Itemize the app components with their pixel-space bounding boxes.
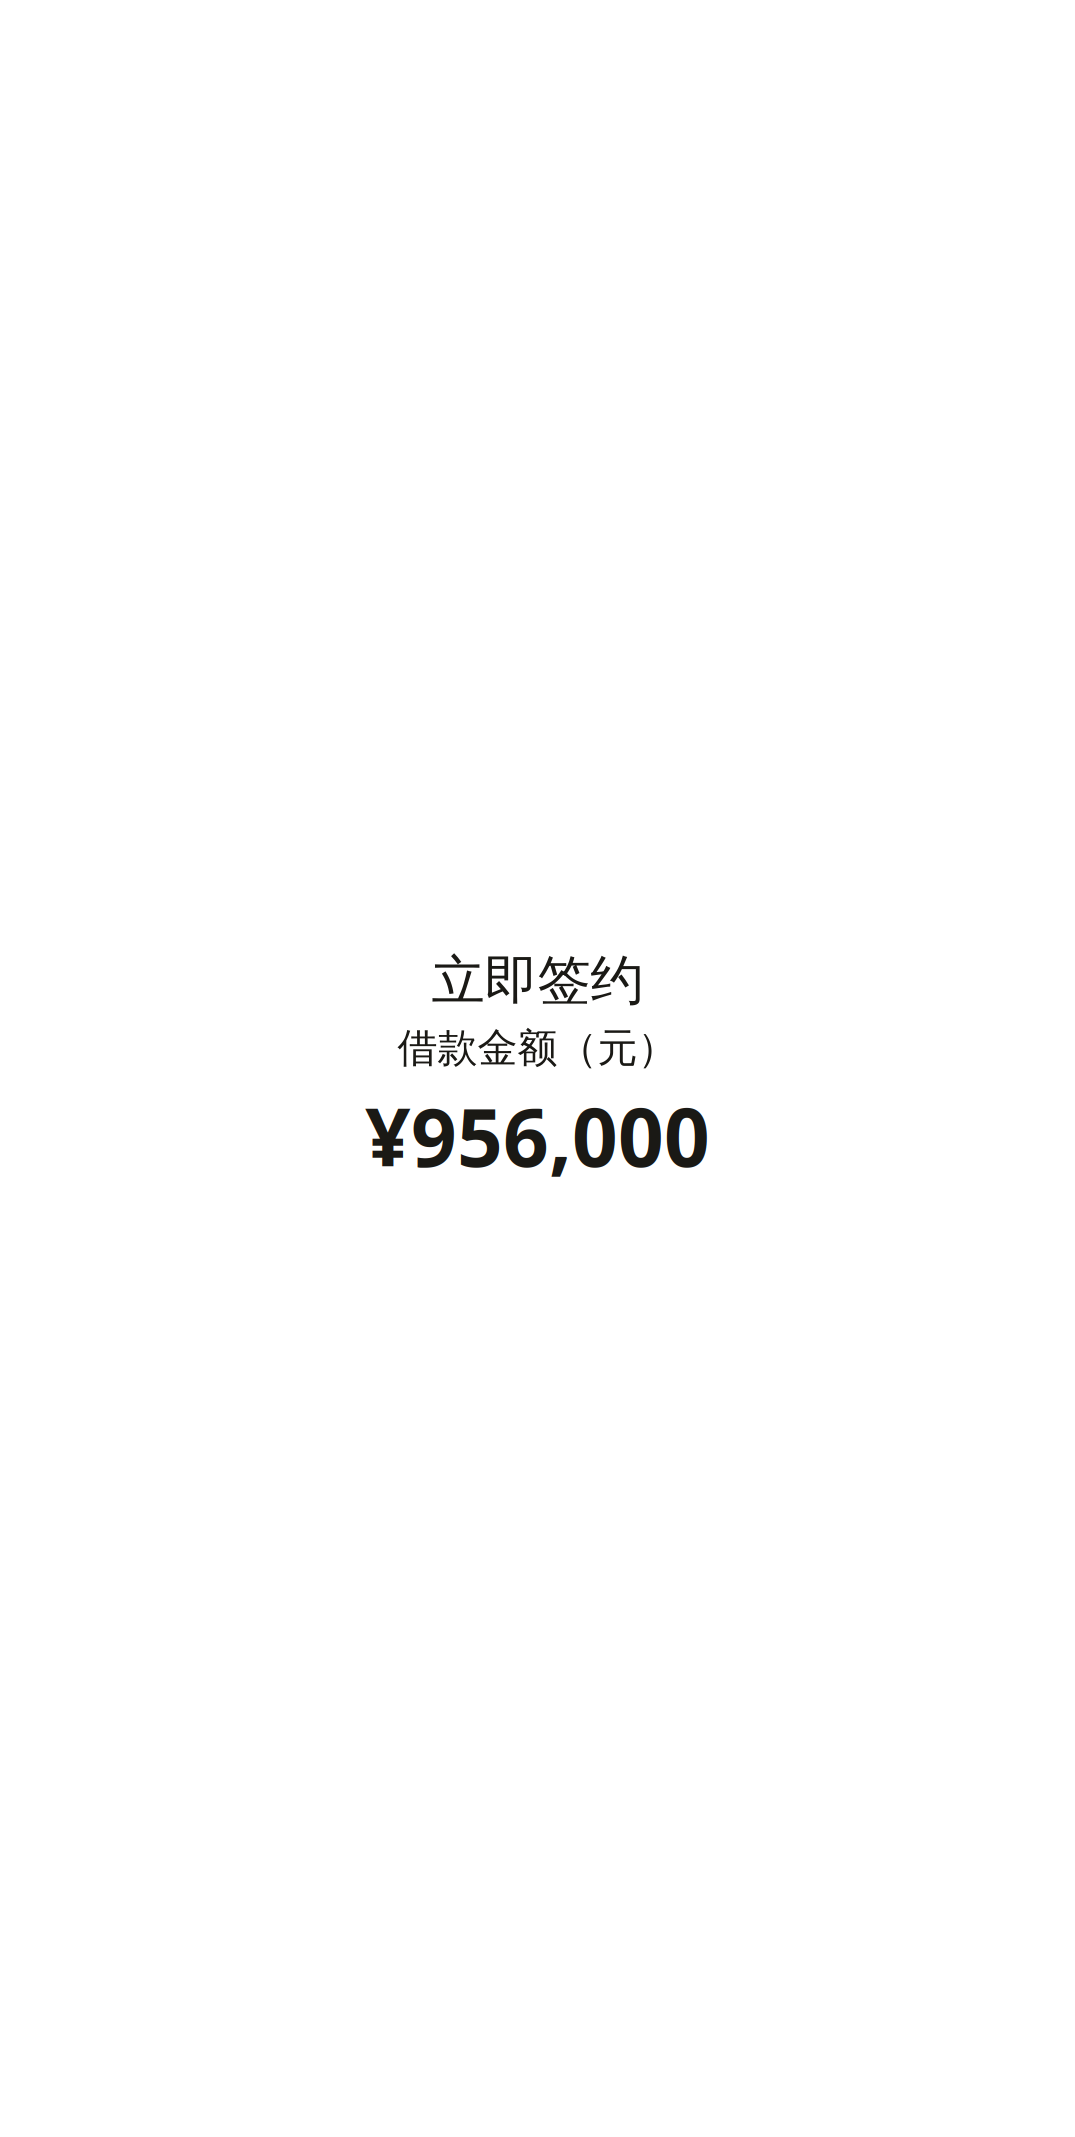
staticText: 立即签约 (431, 948, 643, 1014)
staticText: 借款金额（元） (397, 1024, 677, 1073)
staticText: ¥956,000 (365, 1083, 710, 1189)
